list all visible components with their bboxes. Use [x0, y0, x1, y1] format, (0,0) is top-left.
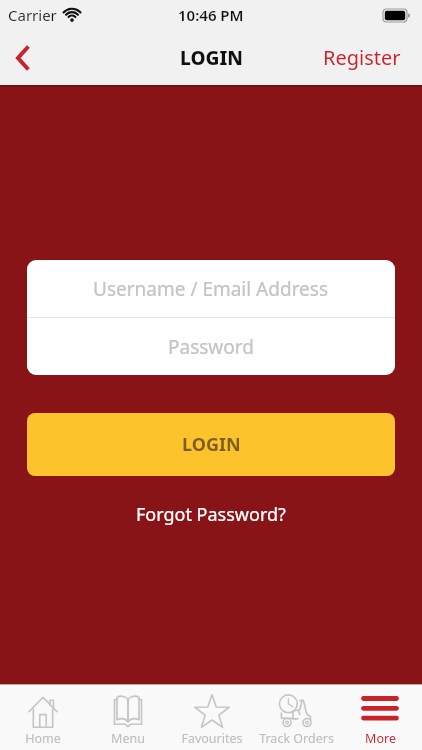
button[interactable]: Username / Email Address: [27, 260, 395, 317]
button[interactable]: Menu: [85, 685, 170, 750]
button[interactable]: Password: [27, 318, 395, 375]
staticText: More: [365, 730, 396, 747]
staticText: Home: [25, 730, 61, 747]
button[interactable]: Track Orders: [254, 685, 338, 750]
button[interactable]: Forgot Password?: [0, 502, 422, 527]
button[interactable]: Favourites: [170, 685, 254, 750]
button[interactable]: Home: [0, 685, 85, 750]
staticText: Track Orders: [259, 730, 334, 747]
staticText: Forgot Password?: [136, 502, 286, 527]
staticText: LOGIN: [180, 45, 243, 71]
staticText: Carrier: [8, 5, 57, 25]
button[interactable]: [5, 37, 39, 79]
button[interactable]: LOGIN: [27, 413, 395, 476]
button[interactable]: Register: [323, 44, 401, 71]
staticText: Favourites: [181, 730, 243, 747]
staticText: LOGIN: [182, 432, 241, 457]
staticText: Register: [323, 44, 401, 71]
button[interactable]: More: [338, 685, 422, 750]
staticText: Menu: [111, 730, 145, 747]
staticText: Password: [168, 334, 254, 360]
staticText: 10:46 PM: [178, 5, 244, 25]
staticText: Username / Email Address: [93, 276, 329, 302]
